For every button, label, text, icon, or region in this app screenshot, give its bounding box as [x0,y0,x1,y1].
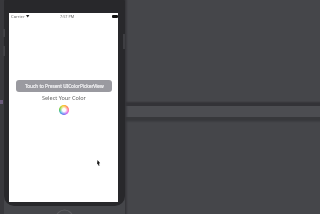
button[interactable] [59,105,69,115]
staticText: Carrier [11,14,25,20]
staticText: Select Your Color [42,94,86,101]
staticText: Touch to Present UIColorPickerView [25,83,104,89]
staticText: 7:57 PM [60,14,75,19]
button[interactable]: Touch to Present UIColorPickerView [16,80,112,92]
